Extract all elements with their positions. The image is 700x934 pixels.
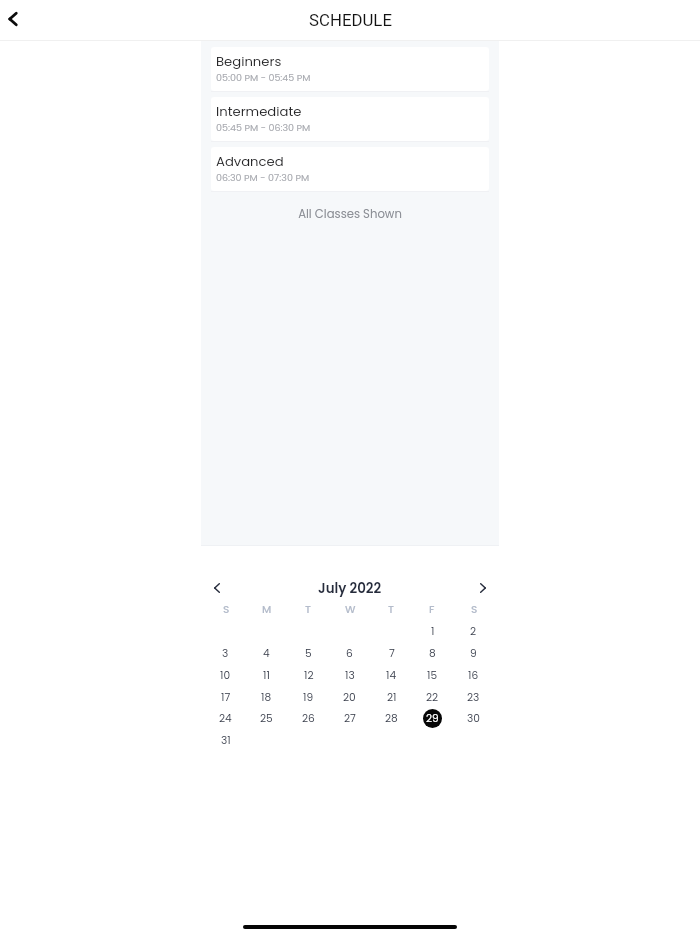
staticText: 13 [345, 668, 355, 683]
button[interactable]: 22 [423, 688, 442, 707]
staticText: S [223, 602, 230, 617]
staticText: 29 [426, 711, 439, 726]
button[interactable]: 3 [216, 644, 235, 663]
button[interactable]: 10 [216, 666, 235, 685]
staticText: 5 [305, 646, 312, 661]
button[interactable]: 30 [464, 709, 483, 728]
staticText: F [429, 602, 435, 617]
staticText: T [305, 602, 311, 617]
staticText: S [471, 602, 478, 617]
staticText: 20 [343, 690, 356, 705]
button[interactable]: 27 [340, 709, 359, 728]
button[interactable]: 13 [340, 666, 359, 685]
button[interactable]: 16 [464, 666, 483, 685]
staticText: 6 [346, 646, 353, 661]
button[interactable]: 26 [299, 709, 318, 728]
staticText: 19 [303, 690, 314, 705]
button[interactable]: 12 [299, 666, 318, 685]
staticText: 28 [385, 711, 398, 726]
staticText: July 2022 [318, 579, 382, 598]
staticText: 25 [260, 711, 273, 726]
staticText: T [388, 602, 394, 617]
staticText: Beginners [216, 52, 282, 70]
button[interactable]: 25 [257, 709, 276, 728]
button[interactable]: 19 [299, 688, 318, 707]
staticText: 2 [470, 624, 477, 639]
button[interactable]: 2 [464, 622, 483, 641]
staticText: 12 [304, 668, 314, 683]
staticText: 9 [470, 646, 477, 661]
button[interactable]: 6 [340, 644, 359, 663]
staticText: 31 [221, 733, 231, 748]
button[interactable]: Next month [471, 576, 495, 600]
staticText: Advanced [216, 152, 284, 170]
button[interactable]: Beginners [211, 47, 489, 91]
button[interactable]: Intermediate [211, 97, 489, 141]
staticText: 8 [429, 646, 436, 661]
button[interactable]: 1 [423, 622, 442, 641]
staticText: 24 [219, 711, 232, 726]
staticText: 30 [467, 711, 480, 726]
button[interactable]: 7 [382, 644, 401, 663]
staticText: 3 [222, 646, 229, 661]
button[interactable]: Previous month [205, 576, 229, 600]
staticText: 23 [467, 690, 480, 705]
button[interactable]: 31 [216, 731, 235, 750]
staticText: 26 [302, 711, 315, 726]
staticText: 06:30 PM - 07:30 PM [216, 171, 310, 184]
button[interactable]: 4 [257, 644, 276, 663]
button[interactable]: 24 [216, 709, 235, 728]
button[interactable]: 29 [423, 709, 442, 728]
staticText: 05:45 PM - 06:30 PM [216, 121, 311, 134]
staticText: 21 [387, 690, 397, 705]
staticText: All Classes Shown [211, 206, 489, 222]
staticText: 10 [220, 668, 231, 683]
staticText: Intermediate [216, 102, 302, 120]
button[interactable]: 14 [382, 666, 401, 685]
button[interactable]: 8 [423, 644, 442, 663]
staticText: 7 [389, 646, 395, 661]
staticText: 16 [468, 668, 479, 683]
staticText: 4 [263, 646, 270, 661]
button[interactable]: 9 [464, 644, 483, 663]
button[interactable]: 20 [340, 688, 359, 707]
staticText: 14 [386, 668, 397, 683]
button[interactable]: 11 [257, 666, 276, 685]
staticText: 27 [344, 711, 356, 726]
button[interactable]: Advanced [211, 147, 489, 191]
staticText: M [262, 602, 272, 617]
staticText: 22 [426, 690, 439, 705]
staticText: W [345, 602, 356, 617]
staticText: 18 [261, 690, 272, 705]
staticText: 11 [263, 668, 270, 683]
staticText: 17 [221, 690, 231, 705]
button[interactable]: 28 [382, 709, 401, 728]
button[interactable]: 17 [216, 688, 235, 707]
button[interactable]: 15 [423, 666, 442, 685]
staticText: 05:00 PM - 05:45 PM [216, 71, 311, 84]
button[interactable]: 18 [257, 688, 276, 707]
staticText: 15 [427, 668, 438, 683]
staticText: SCHEDULE [309, 10, 392, 30]
staticText: 1 [431, 624, 435, 639]
button[interactable]: Back [0, 1, 31, 37]
button[interactable]: 21 [382, 688, 401, 707]
button[interactable]: 23 [464, 688, 483, 707]
button[interactable]: 5 [299, 644, 318, 663]
